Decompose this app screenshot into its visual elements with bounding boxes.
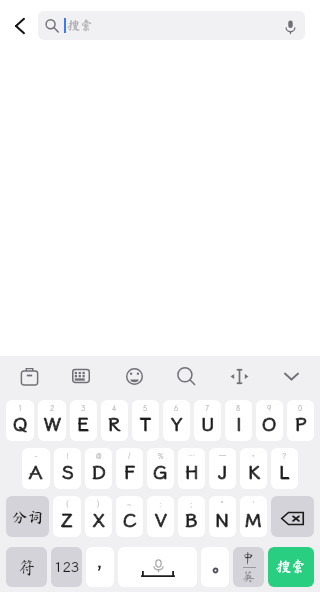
staticText: P <box>295 411 307 436</box>
button[interactable]: 中 <box>233 547 264 587</box>
staticText: W <box>44 411 61 436</box>
button[interactable]: 搜索 <box>268 547 314 587</box>
staticText: N <box>215 507 230 532</box>
button[interactable]: ! <box>54 448 81 489</box>
button[interactable]: - <box>22 448 50 489</box>
button[interactable]: 9 <box>256 400 283 441</box>
button[interactable]: 8 <box>225 400 252 441</box>
staticText: L <box>279 459 290 484</box>
staticText: ! <box>66 452 69 461</box>
staticText: : <box>159 500 162 509</box>
staticText: V <box>155 507 167 532</box>
button[interactable]: Emoji <box>117 359 151 393</box>
button[interactable] <box>86 547 114 587</box>
staticText: Q <box>13 411 28 436</box>
staticText: Q <box>13 411 28 436</box>
staticText: ( <box>66 500 69 509</box>
button[interactable]: Search <box>169 359 203 393</box>
button[interactable]: Backspace <box>271 496 314 537</box>
staticText: B <box>185 507 198 532</box>
button[interactable]: ? <box>271 448 298 489</box>
button[interactable]: — <box>209 448 236 489</box>
staticText: E <box>77 411 90 436</box>
staticText: 4 <box>112 404 117 413</box>
staticText: B <box>185 507 198 532</box>
staticText: ' <box>252 500 255 509</box>
staticText: X <box>93 507 105 532</box>
button[interactable]: Toolbox <box>12 359 46 393</box>
button[interactable]: 0 <box>287 400 314 441</box>
button[interactable]: 7 <box>194 400 221 441</box>
staticText: F <box>124 459 136 484</box>
button[interactable]: ) <box>85 496 112 537</box>
staticText: 分词 <box>12 509 44 525</box>
staticText: 123 <box>54 558 80 576</box>
button[interactable]: Voice input <box>277 13 303 39</box>
button[interactable]: 2 <box>38 400 66 441</box>
button[interactable]: 符 <box>6 547 47 587</box>
staticText: G <box>153 459 168 484</box>
staticText: 8 <box>236 404 241 413</box>
staticText: 5 <box>143 404 148 413</box>
staticText: J <box>218 459 228 484</box>
button[interactable]: 分词 <box>6 496 49 537</box>
staticText: W <box>44 411 61 436</box>
staticText: I <box>236 411 242 436</box>
button[interactable]: Back <box>4 10 36 42</box>
staticText: @ <box>96 452 102 461</box>
staticText: — <box>219 452 226 461</box>
staticText: P <box>295 411 307 436</box>
staticText: S <box>62 459 74 484</box>
button[interactable] <box>201 547 229 587</box>
button[interactable]: @ <box>85 448 112 489</box>
button[interactable]: ( <box>53 496 81 537</box>
staticText: " <box>221 500 224 509</box>
button[interactable]: ; <box>178 496 205 537</box>
staticText: 9 <box>267 404 272 413</box>
staticText: 3 <box>81 404 86 413</box>
button[interactable]: / <box>116 448 143 489</box>
staticText: M <box>245 507 262 532</box>
button[interactable]: Space <box>118 547 197 587</box>
button[interactable]: : <box>147 496 174 537</box>
button[interactable]: ~ <box>116 496 143 537</box>
staticText: H <box>185 459 199 484</box>
button[interactable]: 1 <box>6 400 34 441</box>
staticText: D <box>92 459 106 484</box>
staticText: Z <box>61 507 73 532</box>
button[interactable]: Move cursor <box>222 359 256 393</box>
staticText: J <box>218 459 228 484</box>
staticText: ? <box>282 452 287 461</box>
button[interactable]: " <box>209 496 236 537</box>
button[interactable]: 搜索 <box>38 11 305 40</box>
button[interactable]: 4 <box>101 400 128 441</box>
button[interactable]: · <box>240 448 267 489</box>
staticText: 7 <box>205 404 210 413</box>
button[interactable]: Hide keyboard <box>274 359 308 393</box>
staticText: U <box>201 411 215 436</box>
button[interactable]: … <box>178 448 205 489</box>
button[interactable]: 6 <box>163 400 190 441</box>
staticText: 2 <box>50 404 55 413</box>
staticText: Y <box>171 411 183 436</box>
staticText: ~ <box>127 500 132 509</box>
staticText: V <box>155 507 167 532</box>
staticText: O <box>262 411 277 436</box>
staticText: K <box>248 459 260 484</box>
button[interactable]: 3 <box>70 400 97 441</box>
staticText: N <box>215 507 230 532</box>
staticText: I <box>236 411 242 436</box>
button[interactable]: Keyboard layout <box>64 359 98 393</box>
staticText: 中 <box>242 552 256 565</box>
staticText: A <box>29 459 43 484</box>
staticText: G <box>153 459 168 484</box>
staticText: R <box>108 411 121 436</box>
staticText: K <box>248 459 260 484</box>
button[interactable]: 123 <box>51 547 82 587</box>
staticText: 搜索 <box>67 19 94 32</box>
button[interactable]: % <box>147 448 174 489</box>
staticText: R <box>108 411 121 436</box>
staticText: 搜索 <box>276 559 307 574</box>
button[interactable]: 5 <box>132 400 159 441</box>
button[interactable]: ' <box>240 496 267 537</box>
